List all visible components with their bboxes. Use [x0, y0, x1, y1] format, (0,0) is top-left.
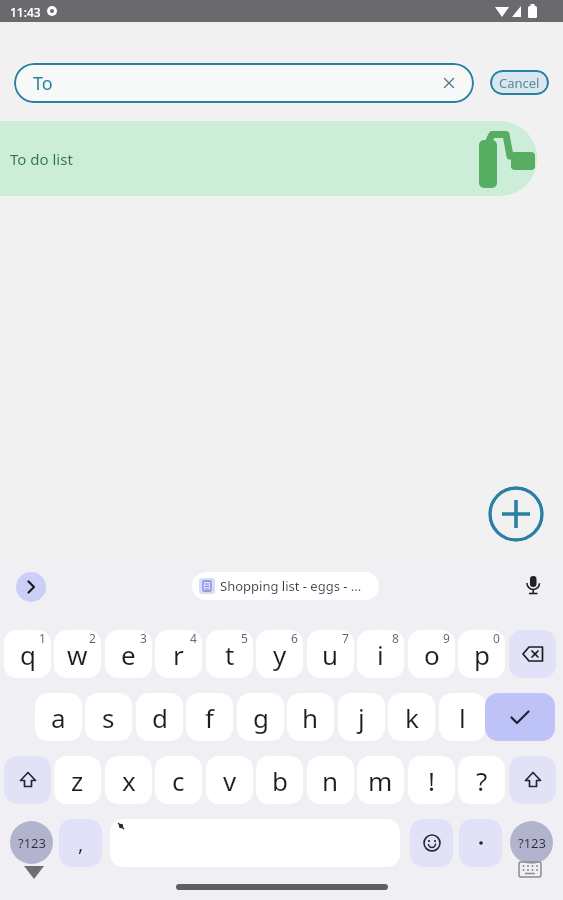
- button[interactable]: x: [105, 756, 152, 804]
- button[interactable]: Cancel: [490, 70, 549, 95]
- button[interactable]: ?: [458, 756, 505, 804]
- button[interactable]: [488, 486, 544, 542]
- staticText: !: [428, 763, 435, 798]
- button[interactable]: z: [54, 756, 101, 804]
- staticText: 2: [89, 630, 96, 646]
- staticText: g: [253, 700, 269, 735]
- staticText: 9: [443, 630, 450, 646]
- staticText: h: [302, 700, 319, 735]
- button[interactable]: To do list: [0, 121, 537, 196]
- button[interactable]: [410, 819, 453, 867]
- button[interactable]: ?123: [10, 821, 53, 864]
- button[interactable]: !: [408, 756, 455, 804]
- button[interactable]: r: [155, 630, 202, 678]
- staticText: 0: [493, 630, 500, 646]
- staticText: r: [173, 637, 184, 672]
- button[interactable]: ,: [59, 819, 102, 867]
- staticText: j: [358, 700, 365, 735]
- staticText: To do list: [10, 149, 73, 169]
- staticText: o: [424, 637, 440, 672]
- button[interactable]: To: [14, 63, 474, 103]
- staticText: w: [67, 637, 88, 672]
- button[interactable]: a: [35, 693, 82, 741]
- staticText: q: [20, 637, 36, 672]
- staticText: s: [102, 700, 115, 735]
- button[interactable]: g: [237, 693, 284, 741]
- staticText: ?123: [18, 834, 46, 852]
- staticText: i: [377, 637, 384, 672]
- button[interactable]: [509, 630, 556, 678]
- button[interactable]: e: [105, 630, 152, 678]
- staticText: l: [459, 700, 466, 735]
- staticText: To: [33, 71, 53, 96]
- button[interactable]: n: [307, 756, 354, 804]
- button[interactable]: [4, 756, 51, 804]
- button[interactable]: [522, 575, 544, 597]
- staticText: ?123: [518, 834, 546, 852]
- staticText: z: [71, 763, 84, 798]
- button[interactable]: j: [338, 693, 385, 741]
- staticText: 8: [392, 630, 399, 646]
- button[interactable]: h: [287, 693, 334, 741]
- button[interactable]: [509, 756, 556, 804]
- staticText: 4: [190, 630, 197, 646]
- button[interactable]: m: [357, 756, 404, 804]
- button[interactable]: y: [256, 630, 303, 678]
- staticText: m: [368, 763, 393, 798]
- button[interactable]: d: [136, 693, 183, 741]
- staticText: e: [121, 637, 136, 672]
- staticText: 1: [39, 630, 46, 646]
- staticText: ,: [78, 830, 84, 857]
- button[interactable]: k: [388, 693, 435, 741]
- button[interactable]: q: [4, 630, 51, 678]
- button[interactable]: o: [408, 630, 455, 678]
- staticText: Cancel: [499, 74, 540, 92]
- button[interactable]: f: [186, 693, 233, 741]
- staticText: d: [152, 700, 168, 735]
- staticText: c: [172, 763, 185, 798]
- button[interactable]: s: [85, 693, 132, 741]
- button[interactable]: [485, 693, 555, 741]
- staticText: y: [273, 637, 287, 672]
- staticText: b: [272, 763, 288, 798]
- staticText: a: [51, 700, 66, 735]
- staticText: 11:43: [10, 4, 41, 20]
- staticText: 5: [241, 630, 248, 646]
- button[interactable]: t: [206, 630, 253, 678]
- staticText: f: [205, 700, 214, 735]
- button[interactable]: c: [155, 756, 202, 804]
- button[interactable]: v: [206, 756, 253, 804]
- staticText: k: [405, 700, 419, 735]
- button[interactable]: u: [307, 630, 354, 678]
- button[interactable]: [459, 819, 502, 867]
- staticText: t: [225, 637, 235, 672]
- staticText: ?: [476, 763, 488, 798]
- button[interactable]: b: [256, 756, 303, 804]
- staticText: n: [322, 763, 339, 798]
- button[interactable]: ?123: [510, 821, 553, 864]
- button[interactable]: Shopping list - eggs - ...: [192, 572, 379, 600]
- button[interactable]: p: [458, 630, 505, 678]
- staticText: u: [322, 637, 339, 672]
- button[interactable]: [110, 819, 400, 867]
- staticText: v: [223, 763, 237, 798]
- staticText: x: [122, 763, 136, 798]
- staticText: 3: [140, 630, 147, 646]
- button[interactable]: l: [439, 693, 486, 741]
- staticText: p: [474, 637, 490, 672]
- button[interactable]: w: [54, 630, 101, 678]
- button[interactable]: [16, 572, 46, 602]
- staticText: Shopping list - eggs - ...: [220, 577, 362, 595]
- button[interactable]: i: [357, 630, 404, 678]
- staticText: 6: [291, 630, 298, 646]
- staticText: 7: [342, 630, 349, 646]
